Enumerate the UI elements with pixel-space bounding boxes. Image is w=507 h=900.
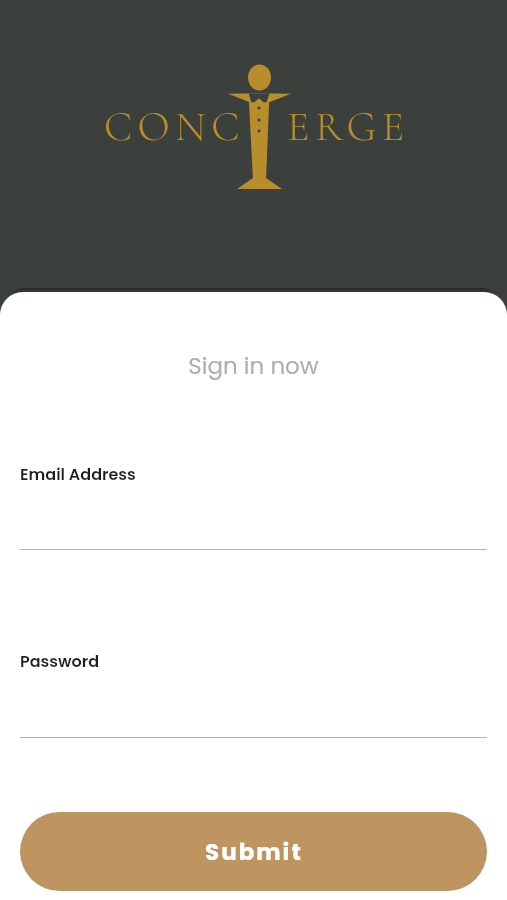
staticText: Submit: [205, 836, 303, 868]
other: Concierge logo: [228, 63, 292, 191]
staticText: Email Address: [20, 463, 136, 485]
staticText: Password: [20, 650, 100, 672]
button[interactable]: Password: [0, 644, 507, 745]
button[interactable]: Submit: [20, 812, 487, 891]
button[interactable]: Email Address: [0, 457, 507, 557]
staticText: CONC: [104, 101, 245, 152]
staticText: Sign in now: [0, 350, 507, 382]
staticText: ERGE: [287, 101, 410, 152]
